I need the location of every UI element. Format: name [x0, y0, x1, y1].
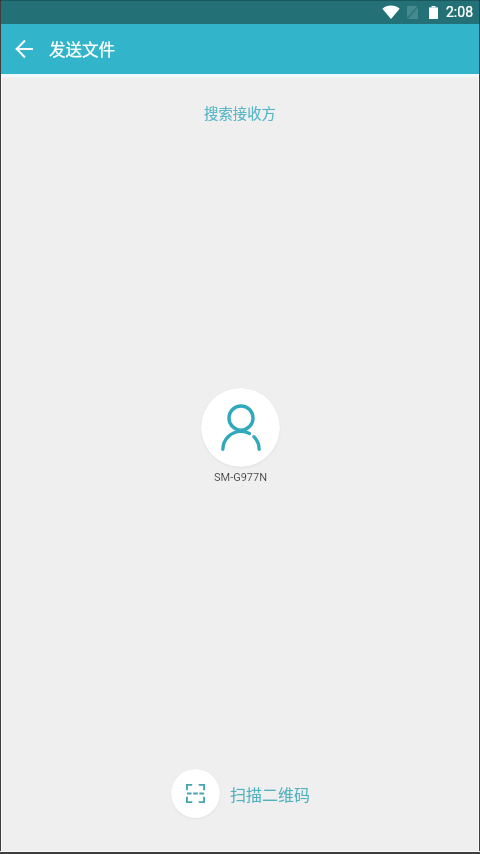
button[interactable]: Back [0, 25, 48, 73]
staticText: 发送文件 [49, 37, 115, 61]
staticText: 搜索接收方 [204, 102, 276, 123]
button[interactable]: 扫描二维码 [171, 769, 311, 818]
button[interactable] [201, 388, 280, 467]
staticText: 2:08 [446, 4, 473, 20]
staticText: 扫描二维码 [230, 782, 311, 805]
staticText: SM-G977N [214, 471, 268, 484]
